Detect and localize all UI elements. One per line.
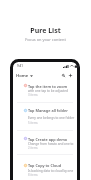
button[interactable]: Home (16, 73, 33, 79)
staticText: Focus on your content (25, 37, 66, 42)
staticText: Tap Copy to Cloud (28, 163, 62, 168)
staticText: 3 items (28, 93, 38, 97)
button[interactable]: Add (67, 72, 74, 79)
button[interactable]: Search (60, 72, 67, 79)
staticText: 5 items (28, 121, 38, 125)
staticText: Is backing data to cloud by one tap (28, 169, 75, 173)
staticText: 8 items (28, 173, 38, 177)
staticText: Tap Create app demo (28, 137, 68, 142)
staticText: Tap Manage all folder (28, 108, 68, 113)
button[interactable]: Tap the item to zoom (13, 81, 78, 102)
staticText: 2 items (28, 146, 38, 150)
staticText: Tap the item to zoom (28, 84, 68, 89)
button[interactable]: Tap Create app demo (13, 131, 78, 154)
staticText: with one tap to be adjusted here (28, 89, 75, 93)
staticText: 9:41 (17, 64, 23, 68)
button[interactable]: Tap Copy to Cloud (13, 156, 78, 178)
staticText: Every one belongs to one folder goes all (28, 116, 75, 120)
staticText: Home (16, 73, 29, 79)
staticText: Change from howto and one to (28, 142, 75, 146)
staticText: Pure List (30, 26, 61, 36)
button[interactable]: Tap Manage all folder (13, 103, 78, 130)
